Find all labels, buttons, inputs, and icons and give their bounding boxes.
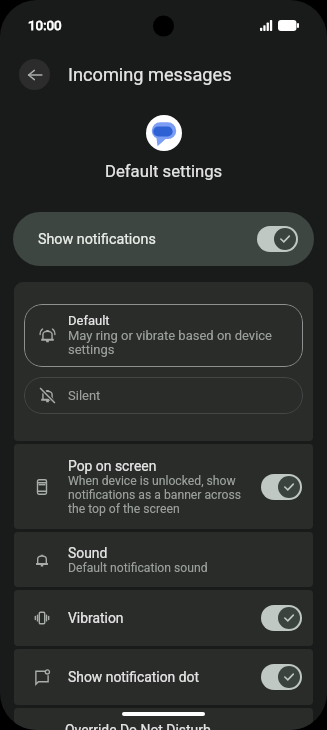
button[interactable]: Pop on screen	[14, 444, 313, 529]
staticText: Default settings	[105, 162, 223, 182]
staticText: 10:00	[28, 17, 62, 33]
staticText: May ring or vibrate based on device sett…	[68, 328, 291, 358]
staticText: Sound	[68, 545, 108, 561]
staticText: Vibration	[68, 610, 261, 626]
staticText: Silent	[68, 388, 101, 403]
button[interactable]: Show notifications	[13, 212, 314, 266]
staticText: Show notifications	[38, 231, 257, 248]
staticText: Show notification dot	[68, 669, 261, 685]
staticText: Default	[68, 313, 110, 328]
staticText: Override Do Not Disturb	[65, 722, 211, 730]
button[interactable]: Vibration	[14, 590, 313, 646]
staticText: Incoming messages	[68, 64, 232, 85]
staticText: When device is unlocked, show notificati…	[68, 474, 253, 516]
staticText: Pop on screen	[68, 458, 157, 474]
button[interactable]: Default	[24, 304, 303, 367]
button[interactable]: Show notification dot	[14, 649, 313, 705]
staticText: Default notification sound	[68, 561, 208, 575]
button[interactable]: Override Do Not Disturb	[14, 708, 313, 730]
button[interactable]: Sound	[14, 532, 313, 587]
button[interactable]: Silent	[24, 377, 303, 414]
button[interactable]: Back	[19, 59, 50, 90]
